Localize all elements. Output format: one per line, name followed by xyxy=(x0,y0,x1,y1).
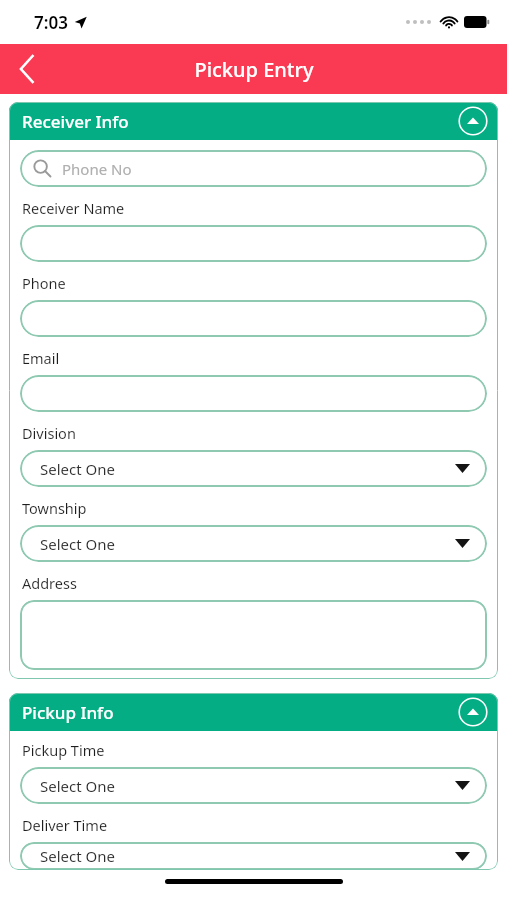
button[interactable]: Back xyxy=(0,44,54,94)
button[interactable] xyxy=(20,600,487,670)
button[interactable] xyxy=(20,300,487,337)
button[interactable]: Select One xyxy=(20,450,487,487)
button[interactable]: Collapse Pickup Info xyxy=(458,697,488,727)
button[interactable]: Collapse Receiver Info xyxy=(458,106,488,136)
staticText: Select One xyxy=(40,776,115,796)
staticText: Pickup Entry xyxy=(194,56,314,83)
staticText: Email xyxy=(22,348,60,368)
staticText: Phone No xyxy=(62,159,132,179)
button[interactable]: Select One xyxy=(20,525,487,562)
staticText: Select One xyxy=(40,459,115,479)
staticText: Township xyxy=(22,498,87,518)
button[interactable]: Phone No xyxy=(20,150,487,187)
staticText: Receiver Info xyxy=(22,110,129,133)
staticText: Division xyxy=(22,423,76,443)
button[interactable] xyxy=(20,375,487,412)
staticText: 7:03 xyxy=(34,11,68,34)
button[interactable]: Select One xyxy=(20,767,487,804)
staticText: Deliver Time xyxy=(22,815,108,835)
button[interactable] xyxy=(20,225,487,262)
staticText: Select One xyxy=(40,534,115,554)
staticText: Address xyxy=(22,573,77,593)
button[interactable]: Select One xyxy=(20,842,487,870)
button[interactable]: Receiver Info xyxy=(9,102,498,140)
staticText: Receiver Name xyxy=(22,198,125,218)
button[interactable]: Pickup Info xyxy=(9,693,498,731)
staticText: Phone xyxy=(22,273,66,293)
staticText: Select One xyxy=(40,846,115,866)
staticText: Pickup Time xyxy=(22,740,105,760)
staticText: Pickup Info xyxy=(22,701,114,724)
